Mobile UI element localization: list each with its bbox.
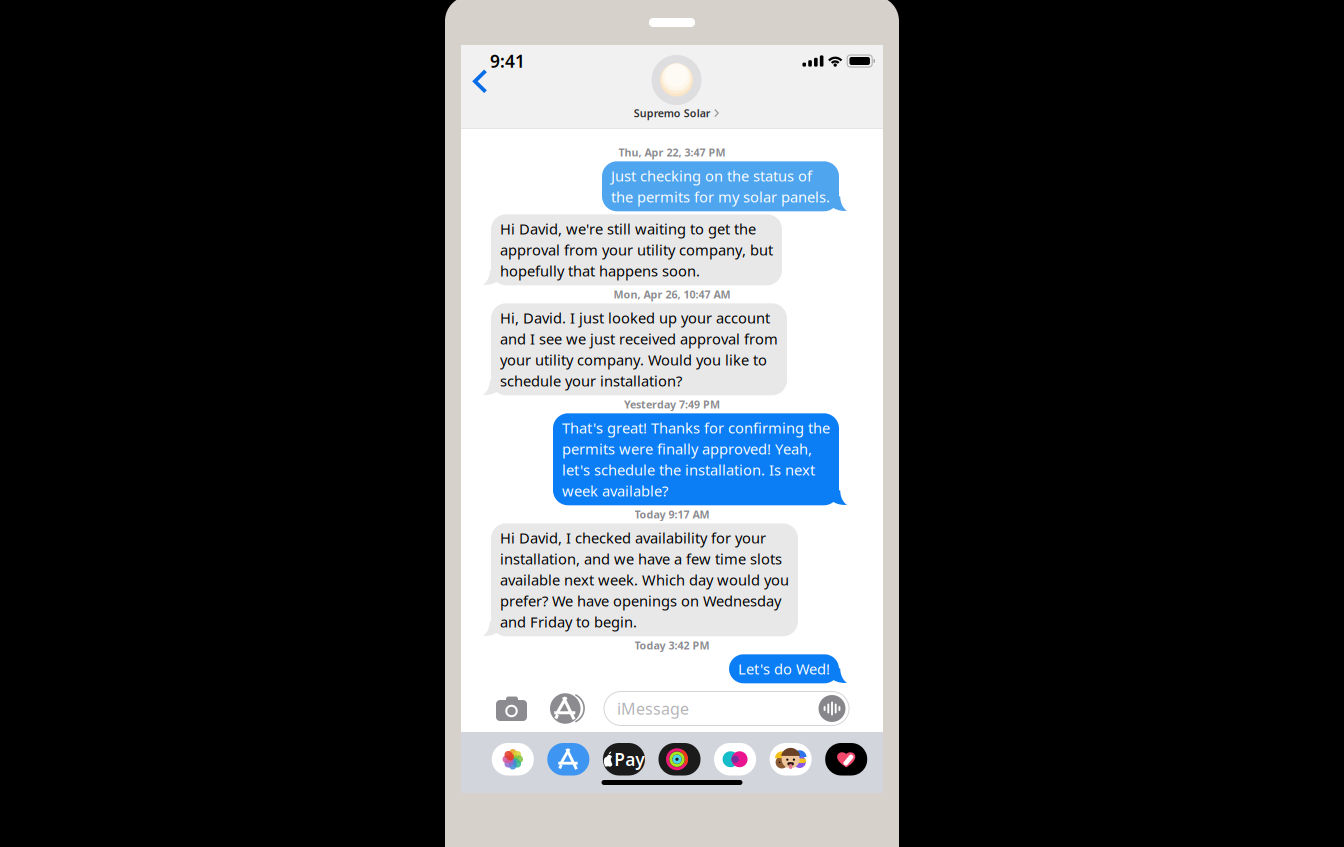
staticText: prefer? We have openings on Wednesday	[500, 591, 781, 611]
staticText: Today 9:17 AM	[634, 507, 709, 521]
staticText: Pay	[614, 748, 644, 771]
staticText: approval from your utility company, but	[500, 240, 773, 260]
button[interactable]: Message field	[604, 691, 849, 725]
button[interactable]: Photos	[485, 743, 541, 775]
staticText: Today 3:42 PM	[634, 638, 709, 652]
staticText: Mon, Apr 26, 10:47 AM	[613, 287, 730, 301]
staticText: hopefully that happens soon.	[500, 261, 700, 281]
staticText: let's schedule the installation. Is next	[562, 460, 815, 480]
staticText: week available?	[562, 481, 668, 501]
button[interactable]: Back	[461, 45, 503, 104]
button[interactable]: Camera	[491, 691, 532, 725]
staticText: schedule your installation?	[500, 371, 682, 391]
staticText: Just checking on the status of	[611, 166, 812, 186]
staticText: That's great! Thanks for confirming the	[562, 418, 830, 438]
staticText: and I see we just received approval from	[500, 329, 778, 349]
button[interactable]: App Store	[541, 743, 596, 775]
button[interactable]: Apple Pay	[596, 743, 652, 775]
button[interactable]: Memoji	[763, 743, 818, 775]
staticText: Yesterday 7:49 PM	[624, 397, 720, 411]
staticText: Supremo Solar	[634, 106, 711, 120]
staticText: and Friday to begin.	[500, 612, 637, 632]
button[interactable]: Music	[707, 743, 763, 775]
staticText: available next week. Which day would you	[500, 570, 789, 590]
staticText: Thu, Apr 22, 3:47 PM	[618, 145, 725, 159]
staticText: the permits for my solar panels.	[611, 187, 830, 207]
staticText: permits were finally approved! Yeah,	[562, 439, 812, 459]
staticText: Hi David, I checked availability for you…	[500, 528, 766, 548]
staticText: installation, and we have a few time slo…	[500, 549, 782, 569]
button[interactable]: iMessage apps	[532, 688, 590, 729]
button[interactable]: Health	[818, 743, 874, 775]
button[interactable]: Fitness	[652, 743, 707, 775]
staticText: Hi, David. I just looked up your account	[500, 308, 770, 328]
staticText: Hi David, we're still waiting to get the	[500, 219, 756, 239]
staticText: 9:41	[490, 49, 525, 72]
staticText: Let's do Wed!	[738, 659, 830, 679]
staticText: your utility company. Would you like to	[500, 350, 767, 370]
staticText: iMessage	[617, 698, 689, 719]
